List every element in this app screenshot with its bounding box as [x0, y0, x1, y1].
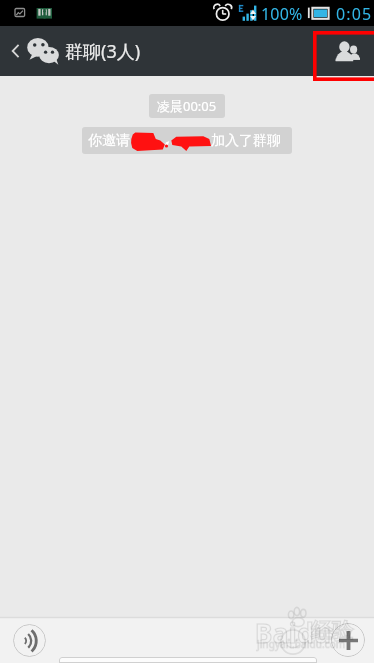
button[interactable]: Back: [0, 26, 26, 76]
button[interactable]: More: [331, 623, 365, 657]
staticText: 0:05: [336, 3, 373, 25]
button[interactable]: Voice input: [13, 624, 46, 657]
staticText: Baidu: [255, 615, 332, 650]
staticText: jingyan.baidu.com: [257, 637, 346, 651]
staticText: 100%: [261, 3, 303, 25]
staticText: 群聊(3人): [65, 39, 141, 64]
button[interactable]: [59, 657, 317, 663]
staticText: 经验: [311, 618, 353, 644]
staticText: 加入了群聊: [211, 132, 281, 150]
staticText: 你邀请: [88, 132, 130, 150]
button[interactable]: Highlighted group members button: [313, 31, 374, 81]
staticText: 凌晨00:05: [157, 97, 217, 115]
button[interactable]: Group members: [313, 26, 374, 76]
